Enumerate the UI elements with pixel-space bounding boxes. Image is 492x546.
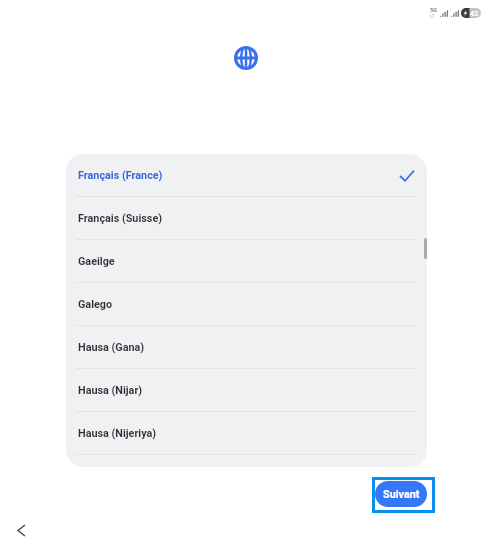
staticText: Galego <box>78 298 113 311</box>
staticText: Français (France) <box>78 169 163 182</box>
staticText: 5G <box>430 7 437 13</box>
button[interactable]: Hausa (Gana) <box>66 326 427 369</box>
button[interactable]: Hausa (Nijeriya) <box>66 412 427 455</box>
button[interactable]: Français (Suisse) <box>66 197 427 240</box>
button[interactable]: Back <box>6 515 37 546</box>
staticText: 42 <box>470 9 479 18</box>
staticText: Hausa (Nijeriya) <box>78 427 157 440</box>
staticText: Hausa (Gana) <box>78 341 145 354</box>
staticText: Gaeilge <box>78 255 115 268</box>
button[interactable]: Gaeilge <box>66 240 427 283</box>
button[interactable]: Suivant <box>375 480 432 510</box>
staticText: Suivant <box>383 488 420 501</box>
button[interactable]: Hausa (Nijar) <box>66 369 427 412</box>
button[interactable]: Français (France) <box>66 154 427 197</box>
staticText: Hausa (Nijar) <box>78 384 143 397</box>
staticText: LT <box>430 14 435 19</box>
staticText: Français (Suisse) <box>78 212 163 225</box>
button[interactable]: Galego <box>66 283 427 326</box>
